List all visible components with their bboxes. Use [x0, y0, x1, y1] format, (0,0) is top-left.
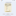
button[interactable]: Breathe — [0, 0, 16, 16]
